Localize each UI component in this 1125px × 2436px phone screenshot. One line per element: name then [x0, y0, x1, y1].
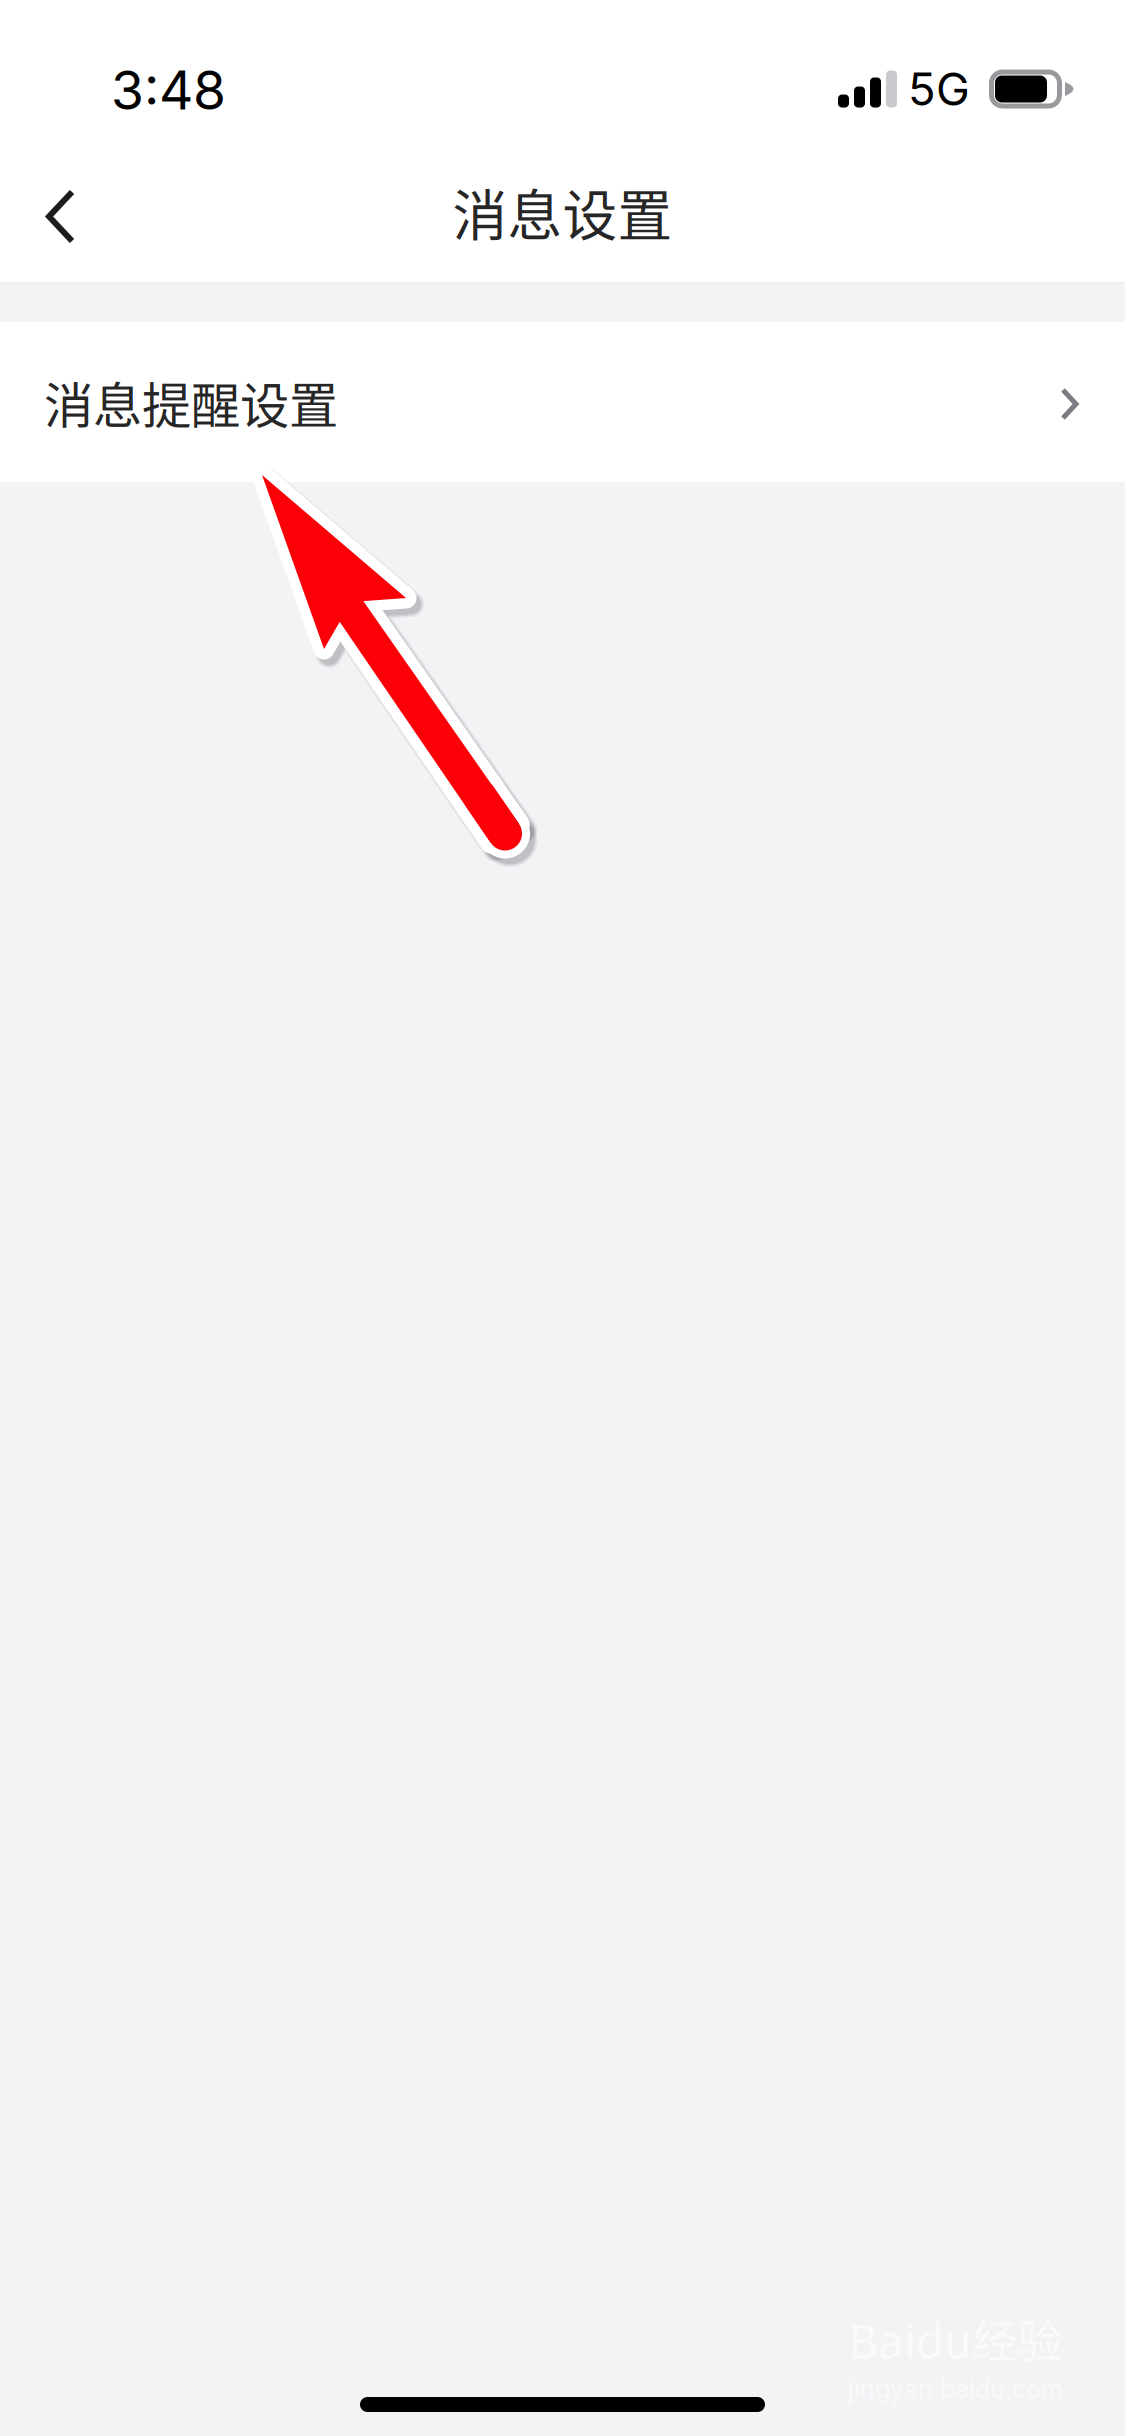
- staticText: 消息提醒设置: [44, 366, 338, 438]
- button[interactable]: Back: [0, 144, 115, 270]
- button[interactable]: 消息提醒设置: [0, 322, 1125, 482]
- staticText: 3:48: [111, 58, 226, 122]
- staticText: 消息设置: [452, 172, 672, 251]
- staticText: 5G: [908, 62, 970, 116]
